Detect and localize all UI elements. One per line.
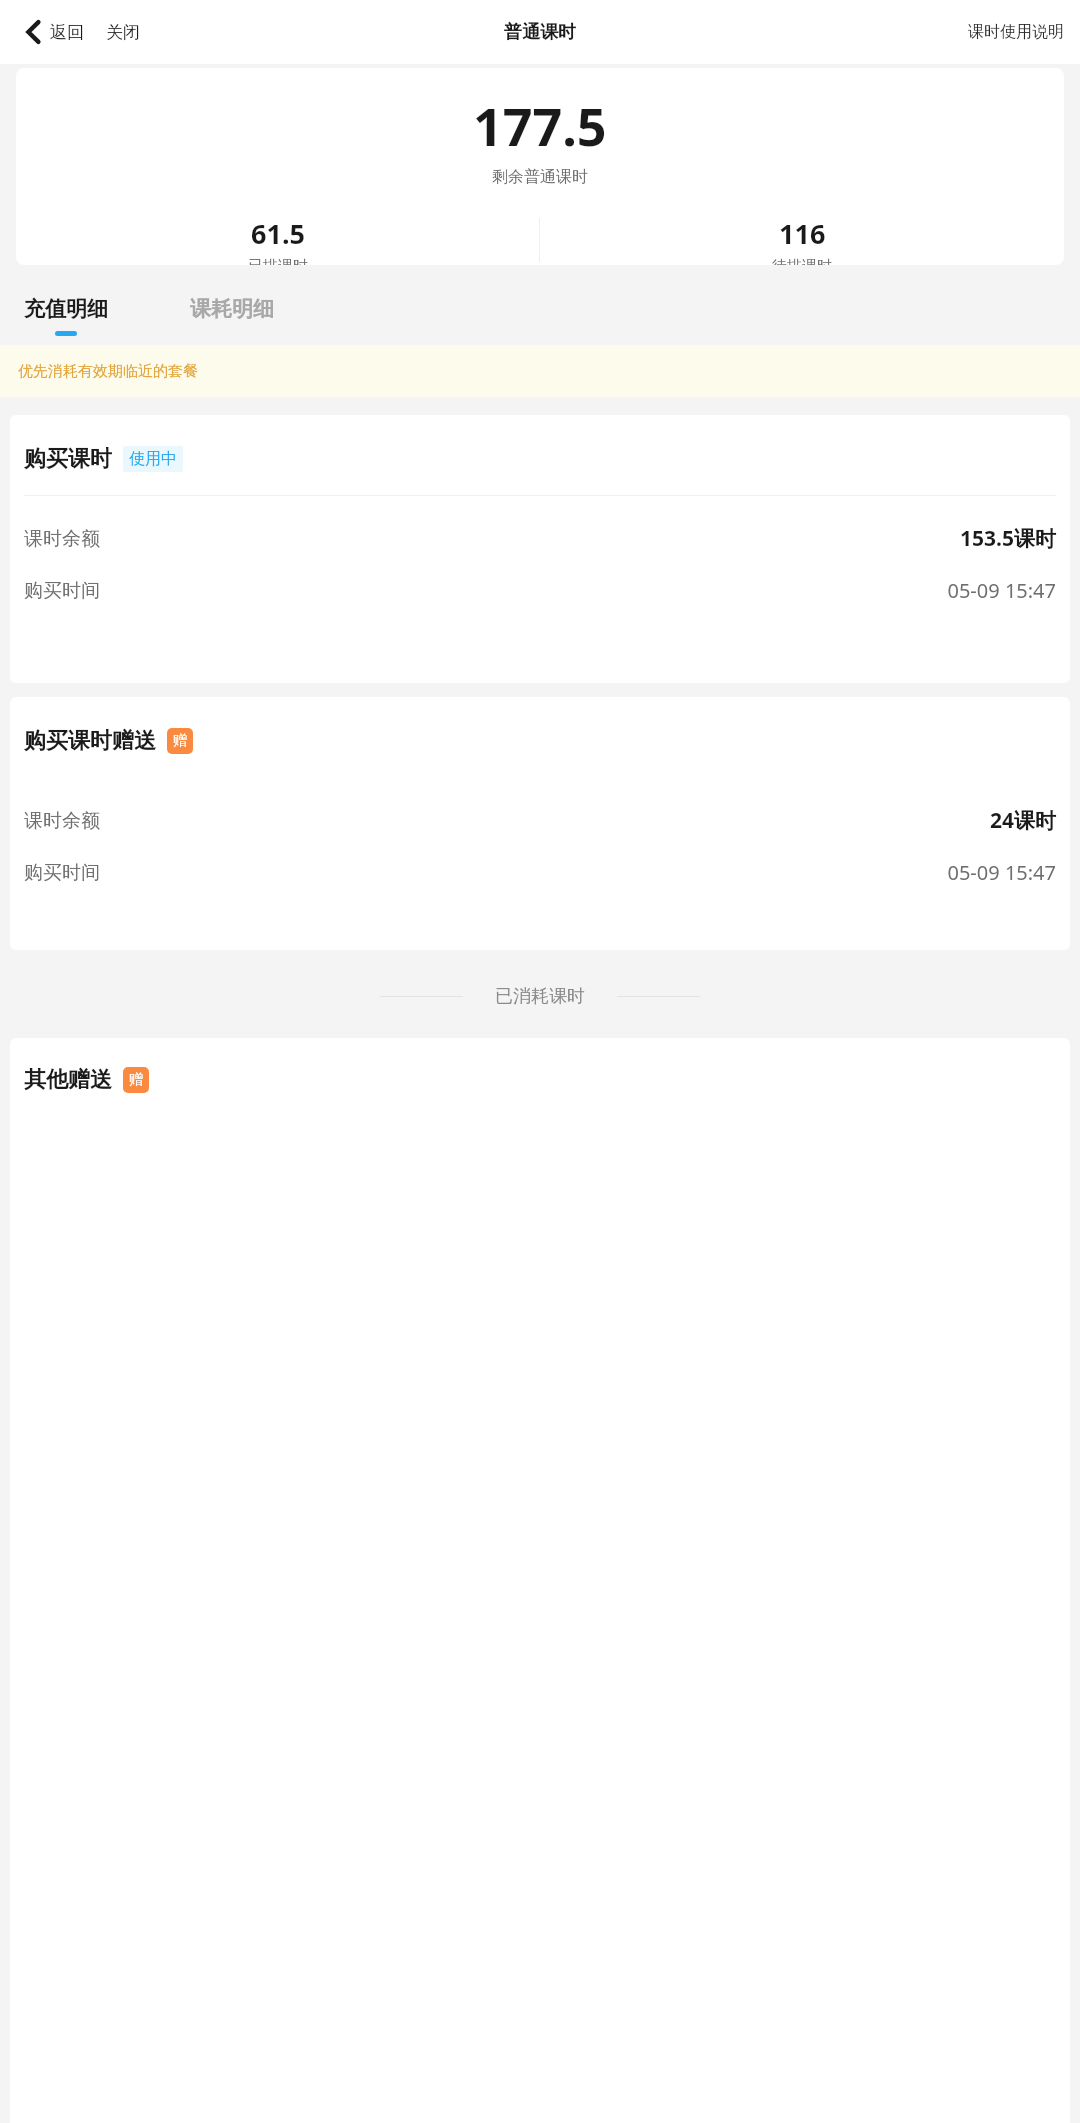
staticText: 剩余普通课时 <box>492 167 588 187</box>
staticText: 课时余额 <box>24 809 100 833</box>
staticText: 61.5 <box>251 215 305 252</box>
staticText: 已消耗课时 <box>495 985 585 1008</box>
staticText: 05-09 15:47 <box>947 859 1056 886</box>
staticText: 购买时间 <box>24 861 100 885</box>
staticText: 赠 <box>173 732 187 750</box>
other: Back <box>24 19 44 45</box>
button[interactable]: 其他赠送 <box>10 1038 1070 2123</box>
staticText: 充值明细 <box>24 296 108 322</box>
button[interactable]: 177.5 <box>16 68 1064 265</box>
staticText: 24课时 <box>989 806 1056 835</box>
staticText: 课时余额 <box>24 527 100 551</box>
staticText: 购买课时 <box>24 445 112 473</box>
staticText: 153.5课时 <box>960 524 1056 553</box>
staticText: 待排课时 <box>772 257 832 265</box>
staticText: 赠 <box>129 1071 143 1089</box>
button[interactable]: 充值明细 <box>12 292 120 340</box>
staticText: 优先消耗有效期临近的套餐 <box>18 362 198 381</box>
staticText: 购买课时赠送 <box>24 727 156 755</box>
staticText: 已排课时 <box>248 257 308 265</box>
staticText: 177.5 <box>473 90 607 161</box>
staticText: 课时使用说明 <box>968 22 1064 42</box>
staticText: 购买时间 <box>24 579 100 603</box>
staticText: 116 <box>779 215 826 252</box>
button[interactable]: Back <box>18 13 90 51</box>
staticText: 返回 <box>50 22 84 43</box>
staticText: 05-09 15:47 <box>947 577 1056 604</box>
button[interactable]: 购买课时 <box>10 415 1070 683</box>
button[interactable]: 关闭 <box>100 16 146 49</box>
staticText: 课耗明细 <box>190 296 274 322</box>
button[interactable]: 课时使用说明 <box>952 14 1080 50</box>
staticText: 使用中 <box>129 449 177 469</box>
button[interactable]: 购买课时赠送 <box>10 697 1070 950</box>
staticText: 关闭 <box>106 22 140 43</box>
staticText: 其他赠送 <box>24 1066 112 1094</box>
staticText: 普通课时 <box>504 21 576 44</box>
button[interactable]: 课耗明细 <box>178 292 286 340</box>
